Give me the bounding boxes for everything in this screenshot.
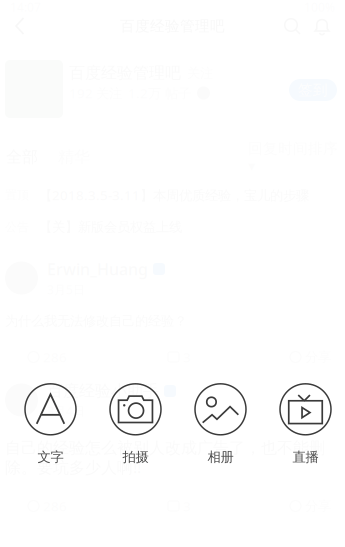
button[interactable]: 拍摄 <box>98 385 172 463</box>
staticText: 自己的经验怎么被别人改成广告了，也不能删 <box>5 438 325 458</box>
staticText: 文字 <box>37 449 63 465</box>
staticText: 除。要坑多少人啊!! <box>5 456 141 478</box>
staticText: 百度经验小助手 <box>47 381 159 401</box>
staticText: 3月4日 <box>47 403 85 419</box>
button[interactable]: 直播 <box>268 385 342 463</box>
staticText: 拍摄 <box>122 449 148 465</box>
staticText: 直播 <box>292 449 318 465</box>
button[interactable]: 文字 <box>13 385 87 463</box>
button[interactable]: 相册 <box>183 385 257 463</box>
staticText: 相册 <box>207 449 233 465</box>
